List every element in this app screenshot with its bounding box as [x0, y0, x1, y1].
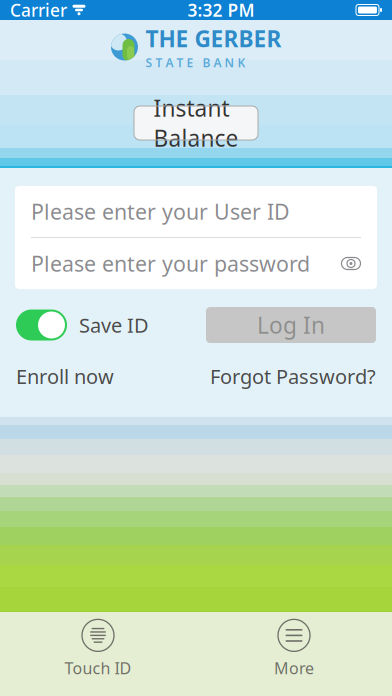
staticText: Please enter your User ID — [31, 197, 290, 226]
button[interactable]: Enroll now — [16, 363, 114, 390]
button[interactable]: More — [244, 619, 344, 679]
staticText: Enroll now — [16, 363, 114, 390]
button[interactable]: Touch ID — [48, 619, 148, 679]
staticText: Log In — [257, 310, 325, 340]
button[interactable]: Please enter your password — [15, 238, 377, 289]
staticText: Please enter your password — [31, 249, 310, 278]
button[interactable]: Log In — [206, 307, 376, 343]
button[interactable]: Instant Balance — [134, 106, 258, 140]
staticText: Carrier — [10, 0, 67, 21]
staticText: Instant Balance — [153, 93, 238, 153]
staticText: Touch ID — [64, 657, 131, 679]
staticText: More — [274, 657, 314, 679]
button[interactable]: Please enter your User ID — [15, 186, 377, 237]
button[interactable]: Save ID — [16, 309, 149, 340]
staticText: THE GERBER — [145, 23, 281, 54]
staticText: 3:32 PM — [187, 0, 254, 21]
staticText: Save ID — [79, 312, 149, 338]
staticText: S T A T E B A N K — [145, 55, 245, 70]
staticText: Forgot Password? — [210, 363, 376, 390]
button[interactable]: Forgot Password? — [210, 363, 376, 390]
